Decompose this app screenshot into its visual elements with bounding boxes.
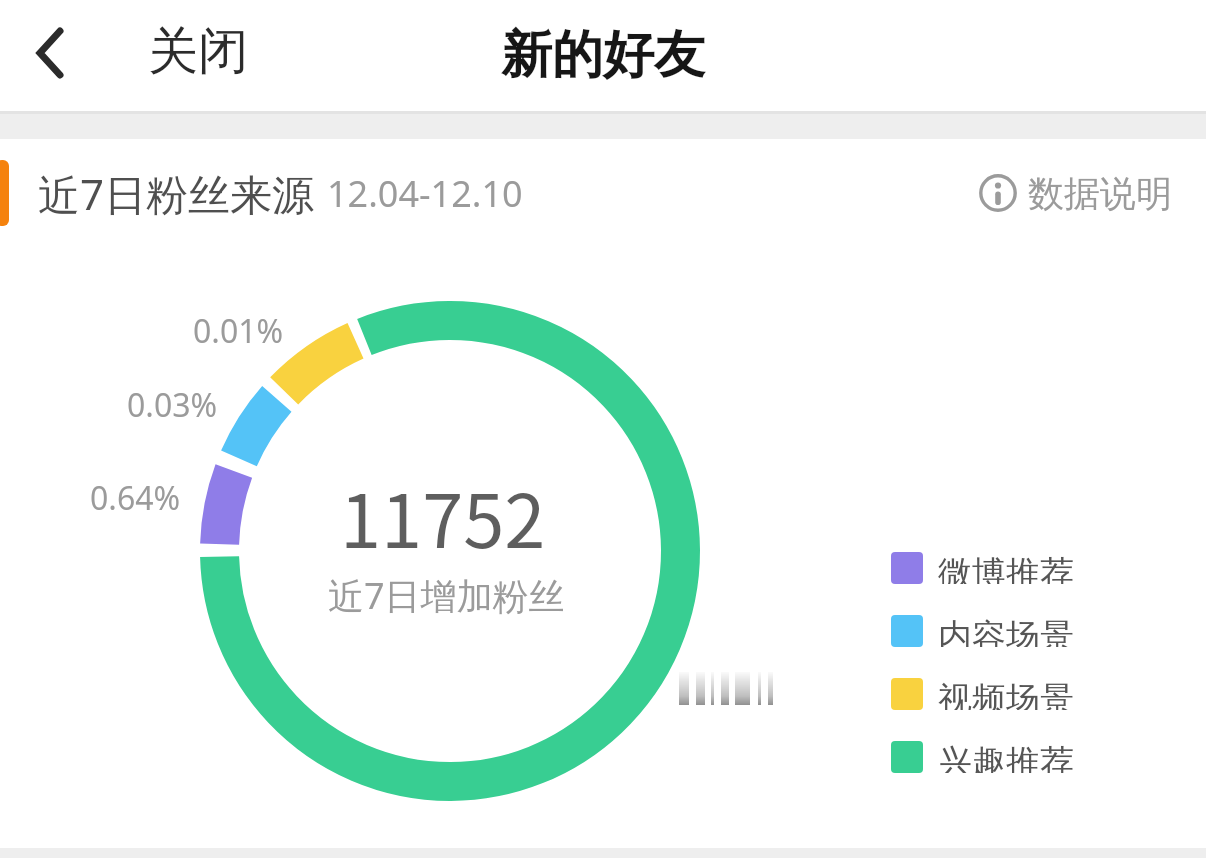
staticText: 新的好友 <box>501 23 705 87</box>
staticText: 0.01% <box>193 309 284 353</box>
staticText: 关闭 <box>148 20 248 83</box>
staticText: 内容场景 <box>938 615 1074 647</box>
staticText: 12.04-12.10 <box>327 169 523 218</box>
staticText: 0.64% <box>90 476 181 520</box>
button[interactable]: 数据说明 <box>978 160 1172 226</box>
staticText: 近7日增加粉丝 <box>328 571 565 620</box>
staticText: 兴趣推荐 <box>938 741 1074 773</box>
staticText: 近7日粉丝来源 <box>38 165 315 222</box>
staticText: 11752 <box>340 462 546 569</box>
button[interactable] <box>24 14 88 90</box>
staticText: 微博推荐 <box>938 552 1074 584</box>
button[interactable]: 关闭 <box>148 0 268 103</box>
staticText: 数据说明 <box>1028 171 1172 216</box>
staticText: 0.03% <box>127 383 218 427</box>
staticText: 视频场景 <box>938 678 1074 710</box>
